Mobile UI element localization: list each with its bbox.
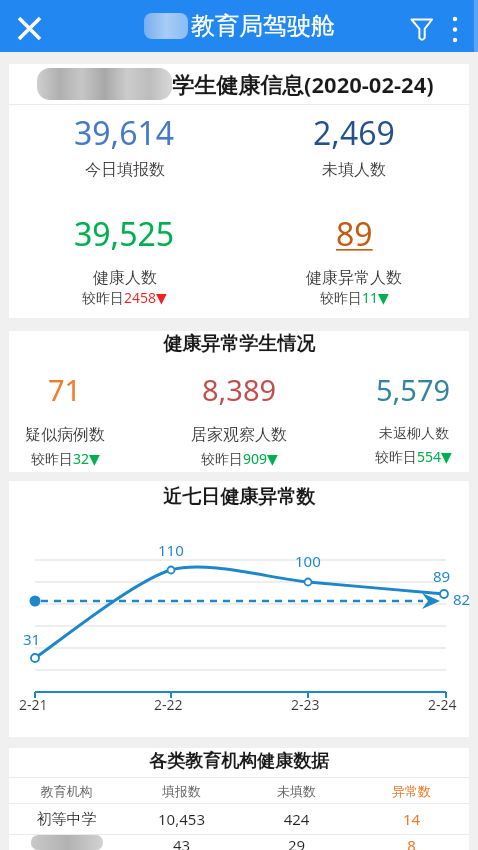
staticText: 未填人数 <box>322 160 386 180</box>
staticText: 8,389 <box>202 370 277 409</box>
staticText: 学生健康信息(2020-02-24) <box>172 69 434 99</box>
staticText: 健康异常人数 <box>306 268 402 288</box>
staticText: 较昨日909▼ <box>201 449 278 468</box>
staticText: 2,469 <box>313 111 395 155</box>
button[interactable]: 初等中学 <box>9 804 469 834</box>
staticText: 43 <box>124 835 239 850</box>
staticText: 2-21 <box>19 695 48 714</box>
button[interactable] <box>400 8 442 48</box>
staticText: 2-24 <box>428 695 457 714</box>
staticText: 82 <box>453 589 471 609</box>
staticText: 居家观察人数 <box>191 425 287 445</box>
staticText: 近七日健康异常数 <box>163 485 315 509</box>
staticText: 各类教育机构健康数据 <box>149 750 329 773</box>
staticText: 2-22 <box>154 695 183 714</box>
staticText: 疑似病例数 <box>25 425 105 445</box>
staticText: 10,453 <box>124 809 239 829</box>
button[interactable] <box>443 8 467 48</box>
staticText: 初等中学 <box>9 810 124 829</box>
staticText: 100 <box>295 551 321 571</box>
staticText: 健康人数 <box>93 268 157 288</box>
staticText: 较昨日11▼ <box>320 288 389 307</box>
staticText: 39,525 <box>74 212 175 256</box>
button[interactable]: 教育机构 <box>9 778 469 803</box>
staticText: 89 <box>336 212 373 256</box>
staticText: 29 <box>239 835 354 850</box>
staticText: 424 <box>239 809 354 829</box>
staticText: 5,579 <box>376 370 451 409</box>
staticText: 未返柳人数 <box>379 425 449 443</box>
staticText: 89 <box>433 566 451 586</box>
staticText: 8 <box>354 835 469 850</box>
staticText: 14 <box>354 809 469 829</box>
staticText: 教育局驾驶舱 <box>191 11 335 41</box>
staticText: 2-23 <box>291 695 320 714</box>
staticText: 71 <box>48 370 82 409</box>
staticText: 教育机构 <box>9 783 124 799</box>
button[interactable] <box>0 0 52 52</box>
staticText: 异常数 <box>354 783 469 799</box>
staticText: 健康异常学生情况 <box>163 332 315 356</box>
staticText: 39,614 <box>74 111 175 155</box>
staticText: 填报数 <box>124 783 239 799</box>
staticText: 110 <box>158 540 184 560</box>
staticText: 较昨日554▼ <box>375 447 452 466</box>
button[interactable]: 43 <box>9 835 469 850</box>
staticText: 较昨日2458▼ <box>82 288 167 307</box>
staticText: 较昨日32▼ <box>31 449 100 468</box>
staticText: 未填数 <box>239 783 354 799</box>
staticText: 31 <box>23 629 41 649</box>
staticText: 今日填报数 <box>85 160 165 180</box>
